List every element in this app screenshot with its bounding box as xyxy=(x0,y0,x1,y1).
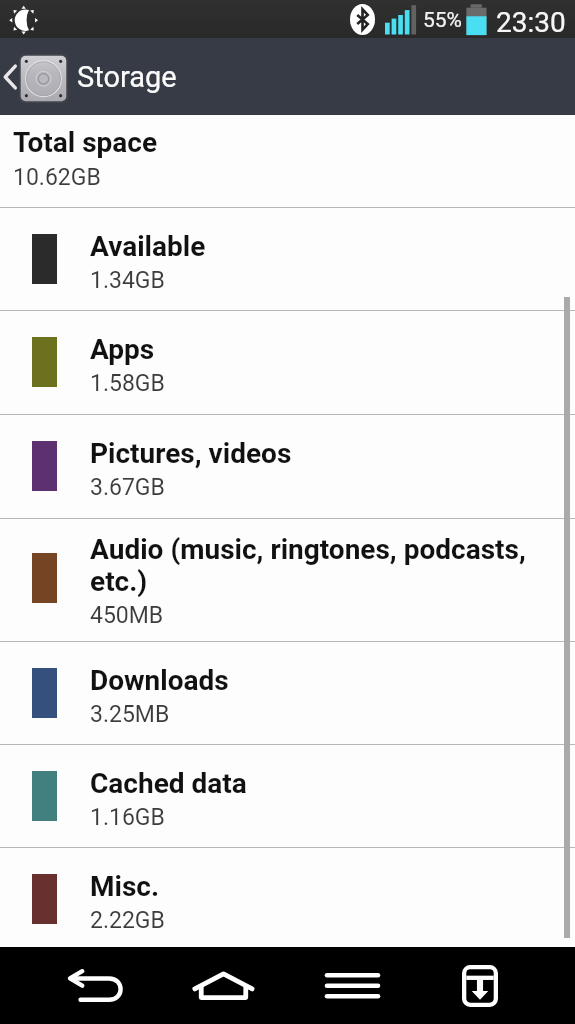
button[interactable]: Recent apps xyxy=(310,947,394,1024)
staticText: Misc. xyxy=(90,870,545,903)
button[interactable]: Misc. xyxy=(0,848,575,947)
staticText: Pictures, videos xyxy=(90,437,545,470)
button[interactable]: Notifications xyxy=(438,947,522,1024)
staticText: 1.34GB xyxy=(90,267,165,294)
staticText: Total space xyxy=(13,126,158,159)
button[interactable]: Pictures, videos xyxy=(0,415,575,518)
staticText: 1.58GB xyxy=(90,370,165,397)
staticText: 23:30 xyxy=(496,6,566,39)
staticText: Downloads xyxy=(90,664,545,697)
button[interactable]: Apps xyxy=(0,311,575,414)
button[interactable]: Back xyxy=(54,947,138,1024)
button[interactable]: Downloads xyxy=(0,642,575,744)
button[interactable]: Navigate up, Storage xyxy=(0,38,575,115)
button[interactable]: Available xyxy=(0,208,575,310)
staticText: Cached data xyxy=(90,767,545,800)
button[interactable]: Home xyxy=(181,947,265,1024)
staticText: 2.22GB xyxy=(90,907,165,934)
button[interactable]: Audio (music, ringtones, podcasts, etc.) xyxy=(0,519,575,641)
staticText: Available xyxy=(90,230,545,263)
staticText: 10.62GB xyxy=(13,164,101,191)
staticText: 3.67GB xyxy=(90,474,165,501)
staticText: 55% xyxy=(423,8,462,33)
staticText: 1.16GB xyxy=(90,804,165,831)
staticText: Apps xyxy=(90,333,545,366)
button[interactable]: Cached data xyxy=(0,745,575,847)
staticText: 450MB xyxy=(90,602,164,629)
staticText: Audio (music, ringtones, podcasts, etc.) xyxy=(90,533,545,598)
staticText: 3.25MB xyxy=(90,701,170,728)
staticText: Storage xyxy=(77,60,177,94)
